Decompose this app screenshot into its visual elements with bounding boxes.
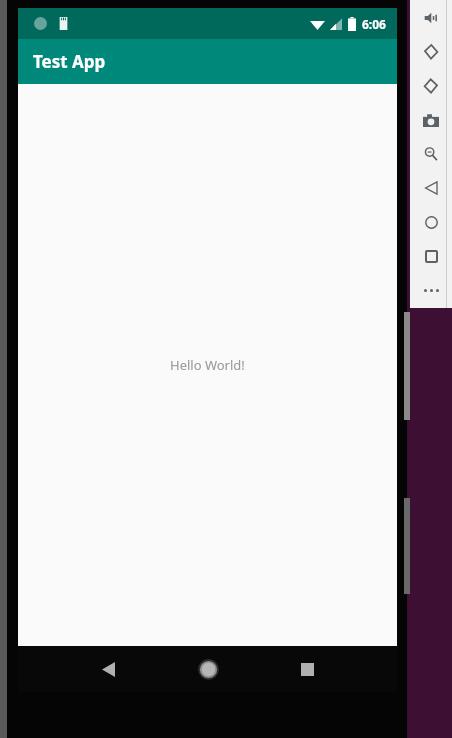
button[interactable]: Rotate right bbox=[410, 70, 452, 102]
button[interactable]: Recent apps bbox=[277, 646, 337, 692]
staticText: 6:06 bbox=[362, 16, 386, 32]
button[interactable]: Home bbox=[410, 206, 452, 238]
button[interactable]: Test App bbox=[18, 39, 397, 84]
button[interactable]: Home bbox=[178, 646, 238, 692]
button[interactable]: Take screenshot bbox=[410, 104, 452, 136]
button[interactable]: Zoom bbox=[410, 138, 452, 170]
button[interactable]: Back bbox=[78, 646, 138, 692]
button[interactable]: Back bbox=[410, 172, 452, 204]
button[interactable]: Rotate left bbox=[410, 36, 452, 68]
staticText: Test App bbox=[33, 50, 106, 73]
button[interactable]: More bbox=[410, 274, 452, 306]
button[interactable]: Volume bbox=[410, 2, 452, 34]
button[interactable]: Overview bbox=[410, 240, 452, 272]
staticText: Hello World! bbox=[170, 356, 245, 374]
